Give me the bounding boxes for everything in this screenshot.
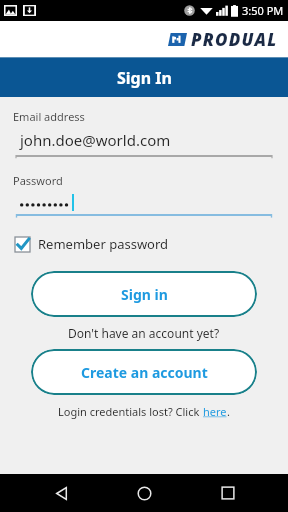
staticText: PRODUAL xyxy=(191,28,278,51)
button[interactable]: Sign in xyxy=(31,271,257,317)
button[interactable] xyxy=(16,194,272,216)
button[interactable]: Back xyxy=(38,474,84,512)
staticText: Sign in xyxy=(121,285,168,304)
staticText: Don't have an account yet? xyxy=(68,325,220,341)
staticText: Remember password xyxy=(38,235,169,253)
staticText: Email address xyxy=(13,109,85,124)
button[interactable]: Home xyxy=(121,474,167,512)
button[interactable]: Recent apps xyxy=(205,474,251,512)
staticText: Create an account xyxy=(81,363,208,382)
staticText: here xyxy=(203,404,227,419)
staticText: Password xyxy=(13,173,63,188)
button[interactable]: here xyxy=(203,404,227,419)
button[interactable]: Create an account xyxy=(31,349,257,395)
staticText: Sign In xyxy=(117,67,172,89)
staticText: 3:50 PM xyxy=(242,3,284,18)
button[interactable]: Produal xyxy=(168,28,278,51)
staticText: . xyxy=(227,404,230,419)
staticText: john.doe@world.com xyxy=(20,130,171,150)
button[interactable]: john.doe@world.com xyxy=(16,130,272,157)
button[interactable]: Remember password xyxy=(15,235,169,253)
staticText: Login credentials lost? Click xyxy=(58,404,203,419)
